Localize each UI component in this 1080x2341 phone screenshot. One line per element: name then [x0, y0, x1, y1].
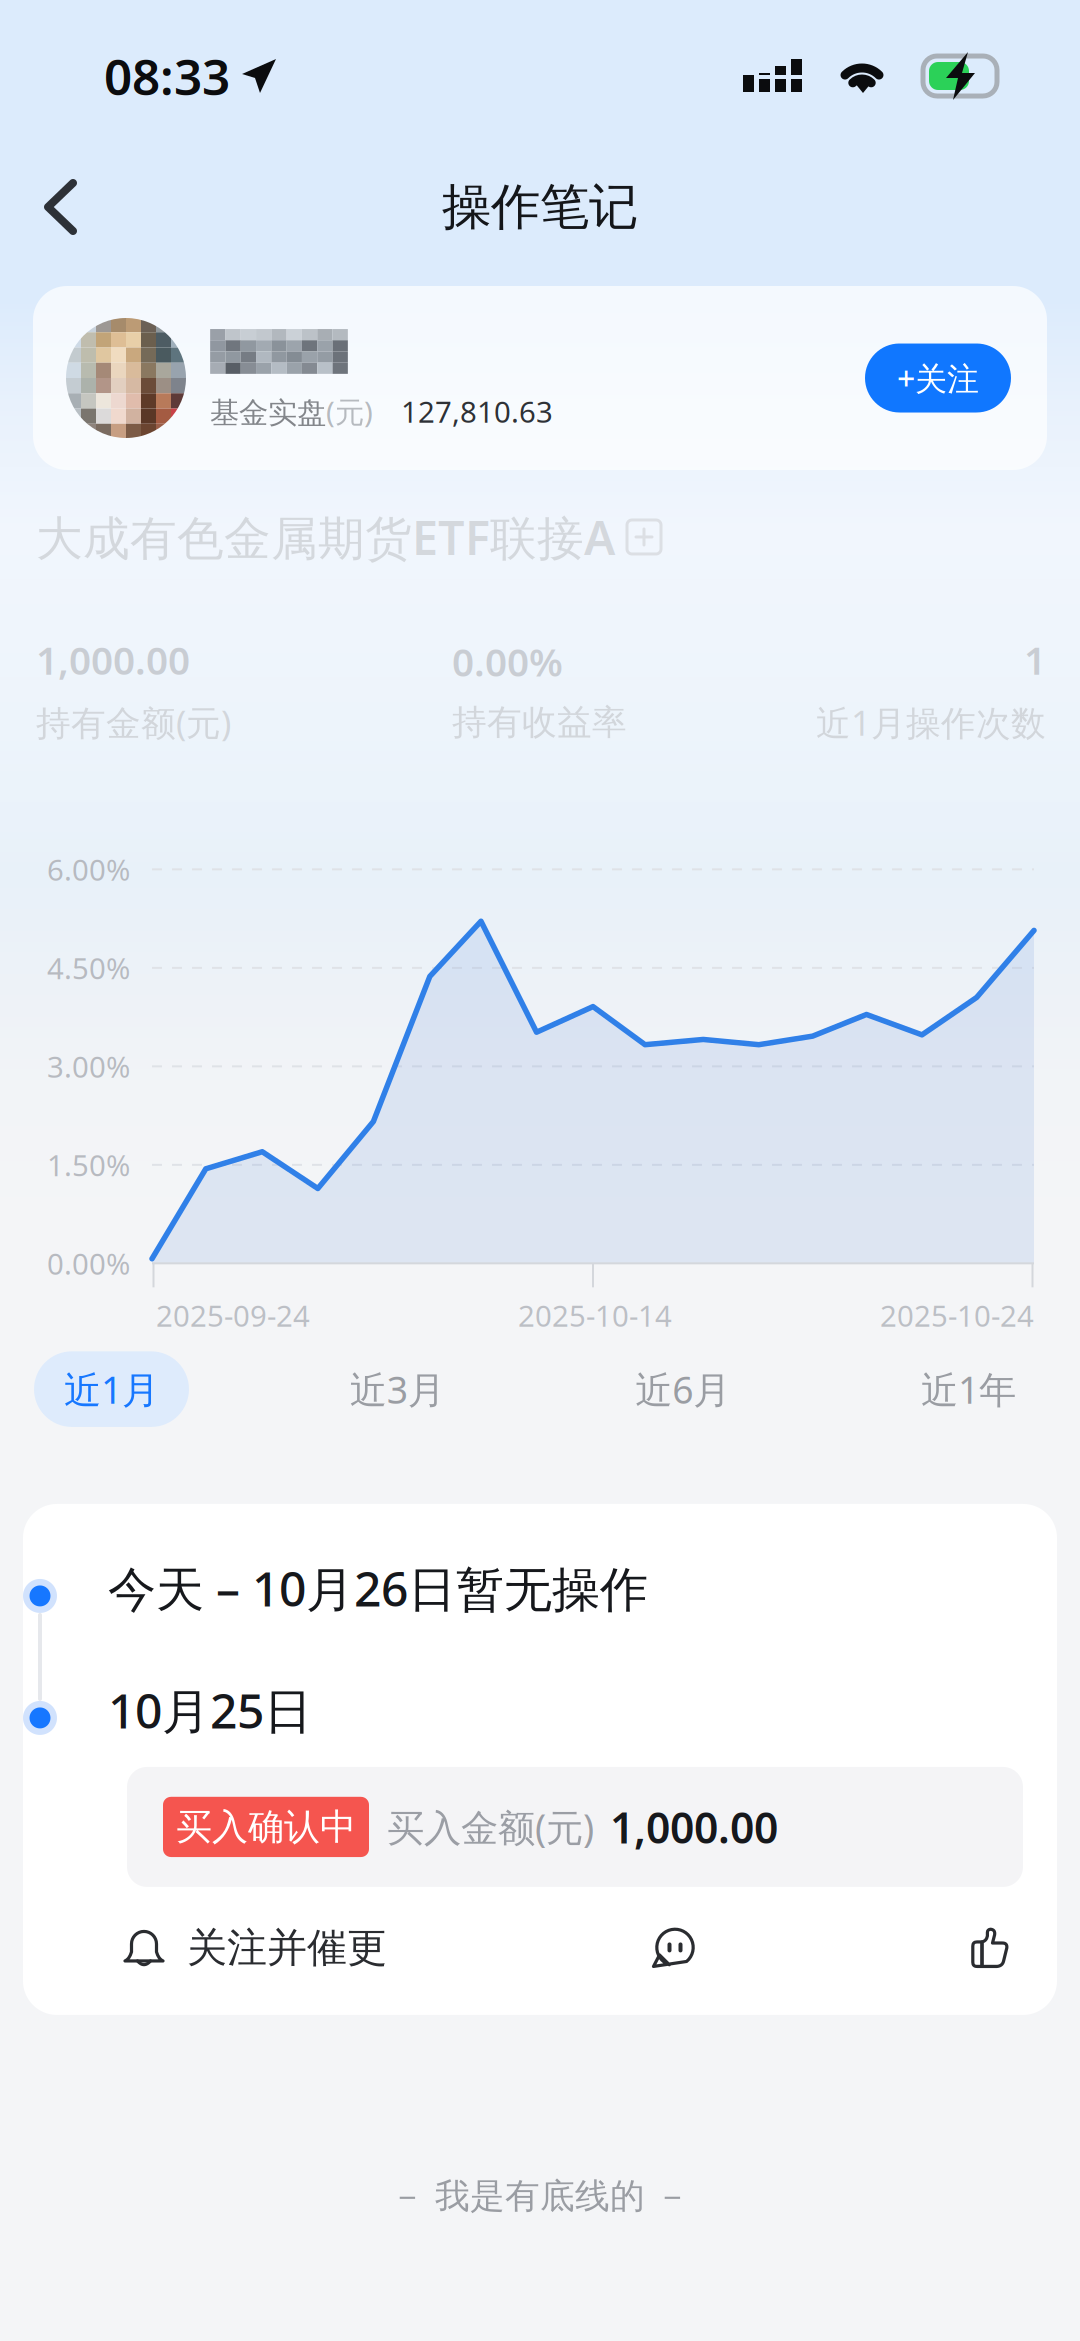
staticText: 0.00%: [47, 1244, 130, 1283]
staticText: 2025-10-14: [518, 1296, 672, 1335]
staticText: 4.50%: [47, 948, 130, 987]
staticText: 持有收益率: [452, 701, 627, 744]
button[interactable]: Comment: [639, 1915, 707, 1980]
button[interactable]: +关注: [865, 343, 1011, 412]
staticText: 近6月: [635, 1364, 730, 1414]
staticText: 1,000.00: [36, 634, 190, 685]
staticText: 今天 – 10月26日暂无操作: [108, 1556, 648, 1620]
staticText: 买入金额(元): [387, 1802, 594, 1852]
staticText: 买入确认中: [176, 1805, 356, 1849]
staticText: 10月25日: [108, 1678, 312, 1742]
staticText: 1: [1024, 634, 1046, 685]
staticText: +关注: [897, 357, 979, 399]
staticText: 近1月: [64, 1364, 159, 1414]
staticText: 127,810.63: [401, 392, 553, 431]
staticText: 操作笔记: [442, 177, 638, 237]
staticText: 3.00%: [47, 1047, 130, 1086]
staticText: 08:33: [104, 43, 230, 109]
staticText: 1.50%: [47, 1145, 130, 1184]
staticText: 0.00%: [452, 636, 563, 687]
button[interactable]: 近3月: [320, 1351, 475, 1427]
staticText: 6.00%: [47, 850, 130, 889]
staticText: 1,000.00: [610, 1799, 778, 1855]
button[interactable]: 近1月: [34, 1351, 189, 1427]
button[interactable]: Back: [0, 152, 107, 262]
staticText: 近1年: [921, 1364, 1016, 1414]
button[interactable]: Like: [959, 1915, 1021, 1980]
staticText: 大成有色金属期货ETF联接A: [36, 506, 615, 568]
staticText: 近1月操作次数: [816, 699, 1046, 745]
button[interactable]: 近1年: [891, 1351, 1046, 1427]
staticText: (元): [326, 392, 373, 431]
staticText: 关注并催更: [187, 1923, 387, 1972]
staticText: 近3月: [350, 1364, 445, 1414]
staticText: 2025-10-24: [880, 1296, 1034, 1335]
staticText: 基金实盘: [210, 395, 326, 431]
button[interactable]: 近6月: [605, 1351, 760, 1427]
staticText: 2025-09-24: [156, 1296, 310, 1335]
staticText: － 我是有底线的 －: [390, 2175, 690, 2217]
staticText: 持有金额(元): [36, 699, 231, 745]
button[interactable]: 关注并催更: [123, 1909, 387, 1986]
